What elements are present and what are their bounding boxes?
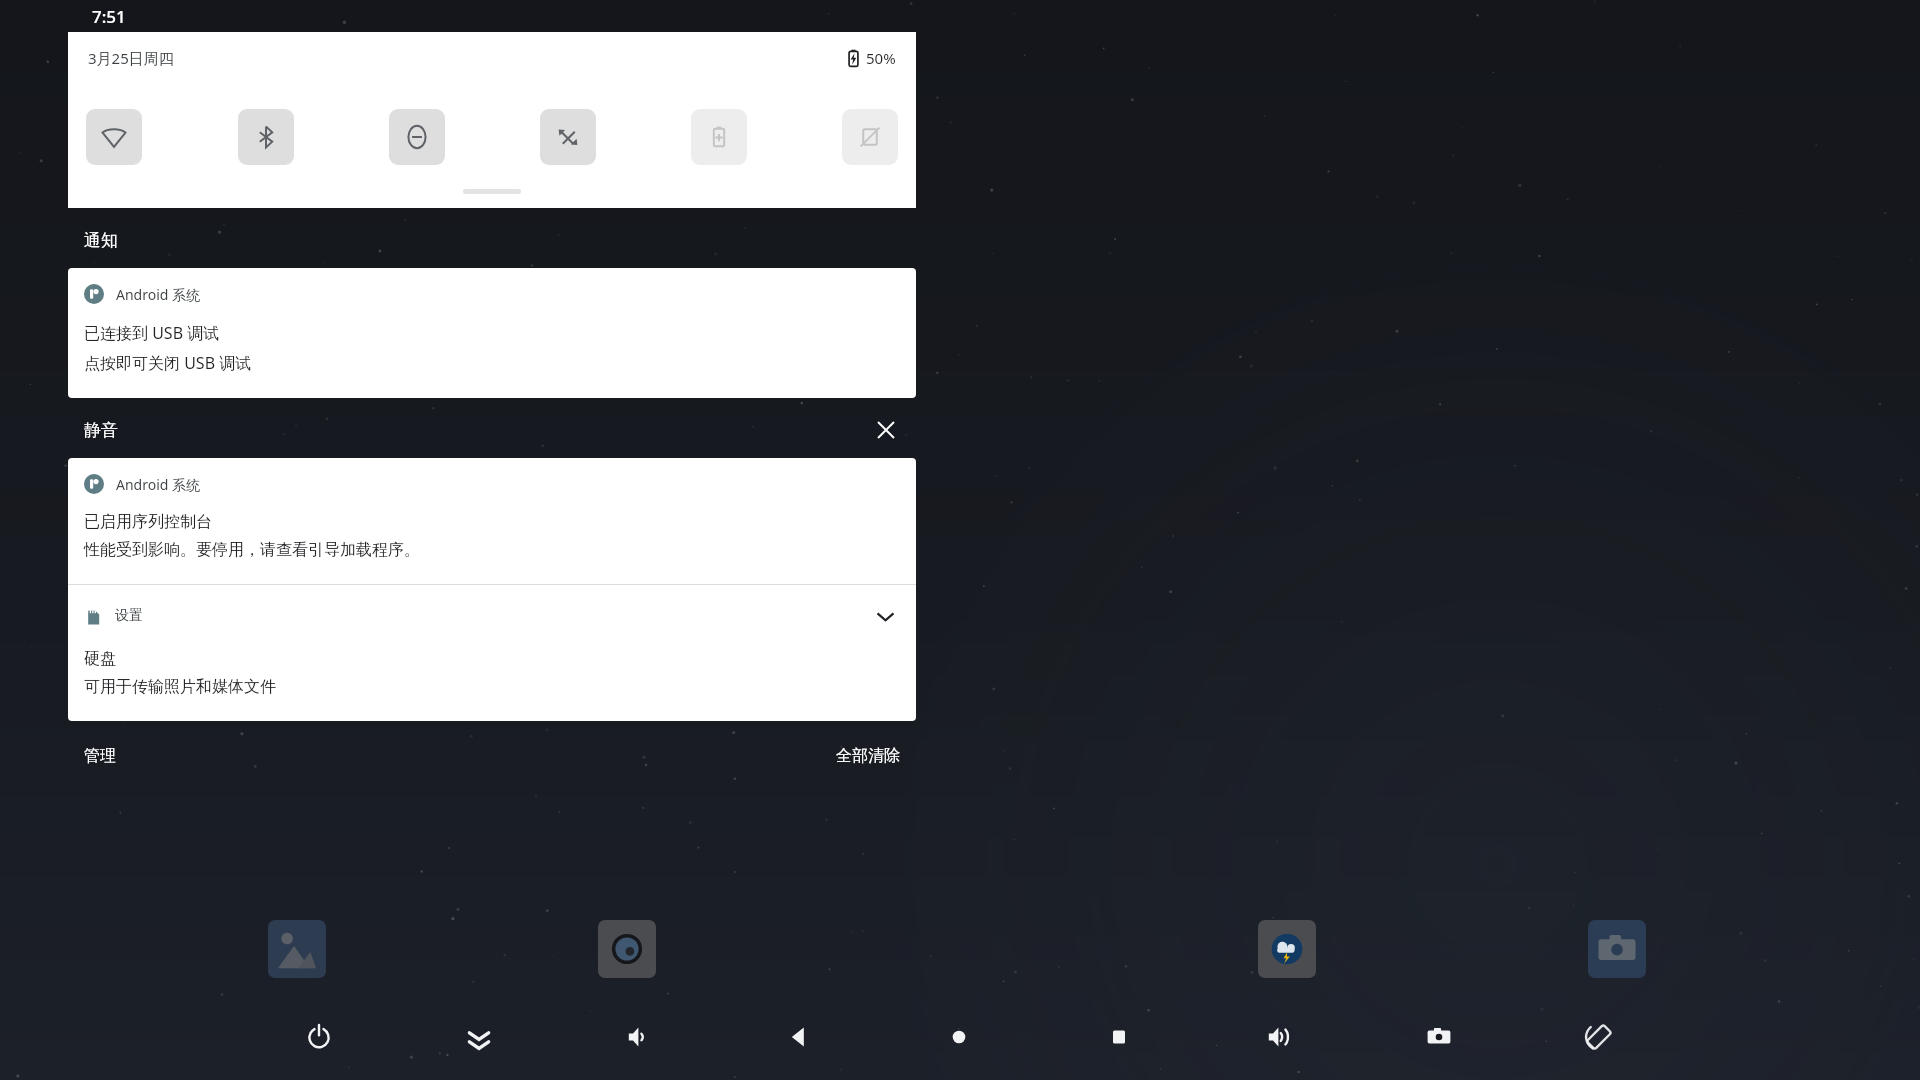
- button[interactable]: Volume up: [1245, 1003, 1313, 1071]
- staticText: 已连接到 USB 调试: [84, 322, 220, 344]
- staticText: 已启用序列控制台: [84, 512, 212, 532]
- button[interactable]: Volume down: [605, 1003, 673, 1071]
- staticText: 性能受到影响。要停用，请查看引导加载程序。: [84, 540, 420, 560]
- button[interactable]: Android 系统: [68, 458, 916, 584]
- button[interactable]: Clear silent section: [866, 414, 906, 446]
- staticText: 静音: [84, 420, 118, 441]
- button[interactable]: Do not disturb: [389, 109, 445, 165]
- button[interactable]: Expand notification: [868, 599, 902, 633]
- staticText: 可用于传输照片和媒体文件: [84, 677, 276, 697]
- button[interactable]: Android 系统: [68, 268, 916, 398]
- button[interactable]: Camera: [1588, 920, 1646, 978]
- staticText: 50%: [866, 48, 896, 68]
- staticText: 点按即可关闭 USB 调试: [84, 352, 252, 374]
- button[interactable]: Gallery: [268, 920, 326, 978]
- button[interactable]: Home: [925, 1003, 993, 1071]
- button[interactable]: Power: [285, 1003, 353, 1071]
- staticText: Android 系统: [116, 475, 201, 494]
- staticText: 全部清除: [836, 746, 900, 766]
- staticText: 3月25日周四: [88, 48, 174, 68]
- button[interactable]: 管理: [68, 738, 132, 774]
- button[interactable]: Weather: [1258, 920, 1316, 978]
- button[interactable]: Screenshot: [1405, 1003, 1473, 1071]
- staticText: 设置: [115, 607, 143, 625]
- button[interactable]: Cast: [842, 109, 898, 165]
- staticText: 硬盘: [84, 649, 116, 669]
- button[interactable]: Auto rotate: [540, 109, 596, 165]
- button[interactable]: Collapse shade: [445, 1003, 513, 1071]
- staticText: 管理: [84, 746, 116, 766]
- button[interactable]: Camera lens: [598, 920, 656, 978]
- button[interactable]: 全部清除: [820, 738, 916, 774]
- button[interactable]: Battery saver: [691, 109, 747, 165]
- button[interactable]: Bluetooth: [238, 109, 294, 165]
- button[interactable]: Wi-Fi: [86, 109, 142, 165]
- staticText: 7:51: [92, 5, 126, 28]
- button[interactable]: 设置: [68, 585, 916, 721]
- staticText: Android 系统: [116, 285, 201, 304]
- button[interactable]: Rotate screen: [1565, 1003, 1633, 1071]
- staticText: 通知: [84, 230, 118, 251]
- button[interactable]: Recent apps: [1085, 1003, 1153, 1071]
- button[interactable]: Back: [765, 1003, 833, 1071]
